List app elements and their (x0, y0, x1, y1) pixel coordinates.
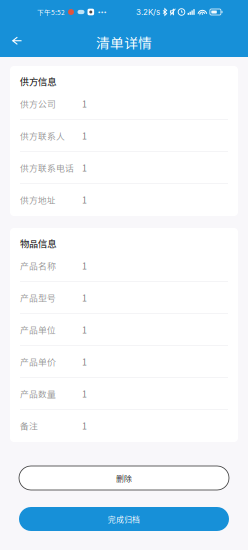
staticText: 产品型号 (20, 291, 56, 304)
staticText: ••• (98, 8, 107, 16)
staticText: 产品数量 (20, 387, 56, 400)
staticText: 备注 (20, 419, 38, 432)
button[interactable]: 完成归档 (19, 507, 229, 531)
staticText: 3.2K/s (136, 7, 160, 17)
staticText: 清单详情 (96, 32, 152, 53)
staticText: 删除 (116, 472, 132, 484)
staticText: 1 (82, 323, 87, 336)
staticText: 1 (82, 259, 87, 272)
staticText: 供方信息 (20, 74, 56, 88)
staticText: 供方地址 (20, 193, 56, 206)
staticText: 供方公司 (20, 97, 56, 110)
staticText: 物品信息 (20, 236, 56, 250)
staticText: 供方联系人 (20, 129, 65, 142)
staticText: 产品名称 (20, 259, 56, 272)
staticText: 1 (82, 387, 87, 400)
staticText: 1 (82, 193, 87, 206)
staticText: 1 (82, 129, 87, 142)
staticText: 1 (82, 419, 87, 432)
staticText: 完成归档 (108, 513, 140, 525)
staticText: 1 (82, 291, 87, 304)
staticText: 1 (82, 97, 87, 110)
staticText: 下午5:52 (37, 7, 65, 17)
staticText: 产品单位 (20, 323, 56, 336)
staticText: 供方联系电话 (20, 161, 74, 174)
button[interactable]: 删除 (19, 466, 229, 490)
staticText: 产品单价 (20, 355, 56, 368)
staticText: 1 (82, 355, 87, 368)
staticText: 1 (82, 161, 87, 174)
button[interactable]: 返回 (0, 24, 34, 57)
